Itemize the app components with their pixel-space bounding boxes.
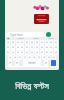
button[interactable]: key [6, 40, 10, 45]
button[interactable]: key [25, 50, 29, 55]
button[interactable]: key [25, 40, 29, 45]
staticText: Type here [10, 33, 23, 37]
button[interactable]: key [20, 45, 24, 50]
button[interactable]: Shared image [34, 14, 49, 24]
button[interactable]: key [40, 40, 44, 45]
button[interactable]: key [40, 50, 44, 55]
button[interactable]: key [32, 55, 36, 60]
button[interactable]: key [45, 45, 49, 50]
button[interactable]: key [49, 45, 53, 50]
button[interactable]: Space [23, 60, 41, 66]
button[interactable]: key [25, 45, 29, 50]
button[interactable]: key [23, 55, 27, 60]
button[interactable]: key [52, 55, 56, 60]
button[interactable]: key [6, 45, 10, 50]
button[interactable]: key [18, 55, 22, 60]
button[interactable]: key [49, 50, 53, 55]
button[interactable]: key [6, 50, 10, 55]
button[interactable]: key [30, 40, 34, 45]
button[interactable]: key [30, 45, 34, 50]
button[interactable]: key [54, 45, 58, 50]
button[interactable]: Type here [6, 32, 45, 37]
staticText: বিভিন্ন ফন্টস [15, 79, 49, 91]
button[interactable]: key [11, 45, 15, 50]
button[interactable]: key [13, 55, 17, 60]
button[interactable]: key [47, 55, 51, 60]
button[interactable]: key [49, 40, 53, 45]
button[interactable]: key [28, 55, 32, 60]
button[interactable]: Emoji [15, 60, 19, 66]
button[interactable]: key [45, 40, 49, 45]
button[interactable]: key [8, 55, 12, 60]
button[interactable]: key [37, 55, 41, 60]
button[interactable]: key [54, 40, 58, 45]
button[interactable]: key [40, 45, 44, 50]
button[interactable]: key [11, 40, 15, 45]
button[interactable]: key [16, 40, 20, 45]
button[interactable]: Enter [51, 60, 56, 66]
button[interactable]: key [35, 50, 39, 55]
button[interactable]: key [42, 55, 46, 60]
button[interactable]: key [45, 50, 49, 55]
button[interactable]: Send [46, 32, 51, 37]
button[interactable]: key [20, 40, 24, 45]
button[interactable]: Symbols [8, 60, 12, 66]
button[interactable]: key [35, 40, 39, 45]
button[interactable]: key [16, 45, 20, 50]
button[interactable]: Period [44, 60, 48, 66]
button[interactable]: key [20, 50, 24, 55]
button[interactable]: key [35, 45, 39, 50]
button[interactable]: key [11, 50, 15, 55]
button[interactable]: key [54, 50, 58, 55]
button[interactable]: key [30, 50, 34, 55]
button[interactable]: key [16, 50, 20, 55]
